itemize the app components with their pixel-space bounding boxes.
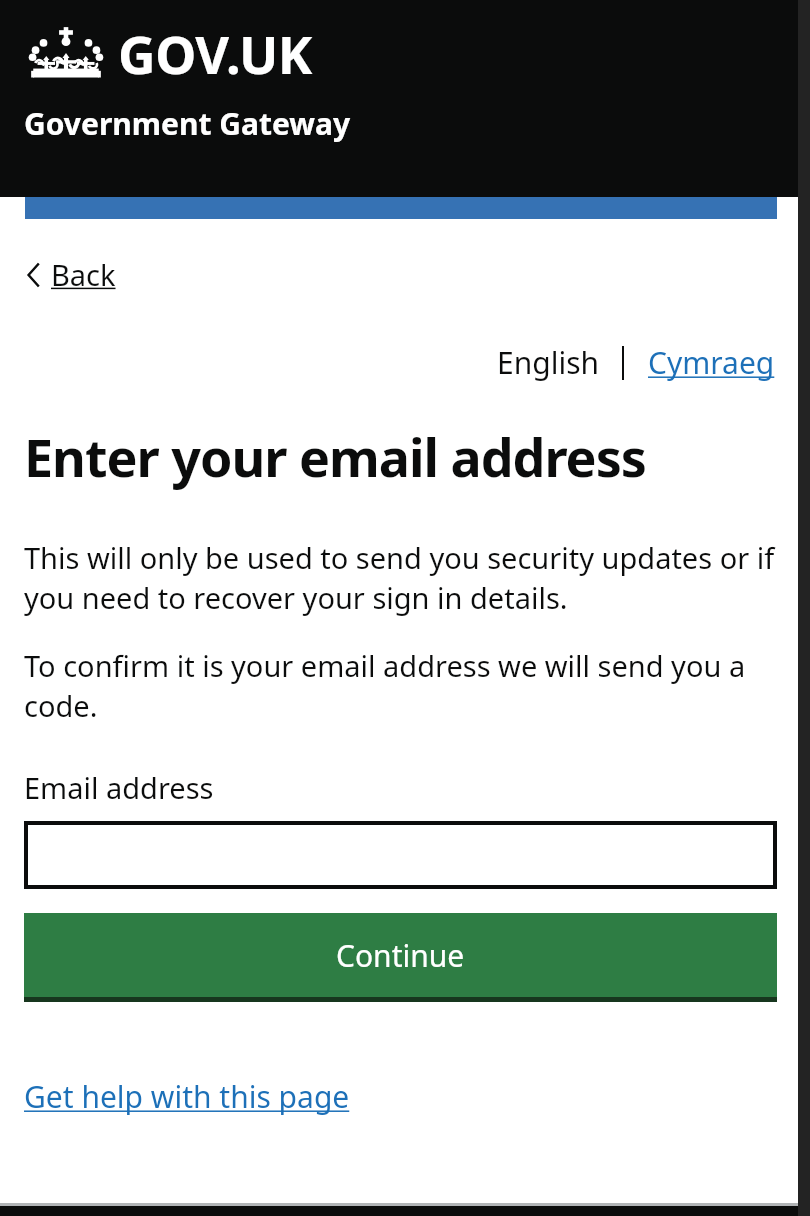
staticText: Email address <box>24 768 214 807</box>
button[interactable]: Cymraeg <box>646 342 777 383</box>
staticText: Continue <box>336 935 465 976</box>
button[interactable]: Back <box>24 251 118 298</box>
staticText: GOV.UK <box>118 18 312 89</box>
button[interactable]: Get help with this page <box>24 1074 350 1119</box>
staticText: Government Gateway <box>24 103 351 144</box>
staticText: Cymraeg <box>648 342 775 383</box>
button[interactable] <box>24 821 777 889</box>
staticText: Get help with this page <box>24 1076 350 1117</box>
staticText: To confirm it is your email address we w… <box>24 646 777 726</box>
staticText: Back <box>51 255 116 294</box>
staticText: This will only be used to send you secur… <box>24 538 777 618</box>
button[interactable]: Continue <box>24 913 777 1002</box>
staticText: Enter your email address <box>24 421 646 492</box>
staticText: English <box>497 342 600 383</box>
button[interactable]: English <box>495 342 602 383</box>
